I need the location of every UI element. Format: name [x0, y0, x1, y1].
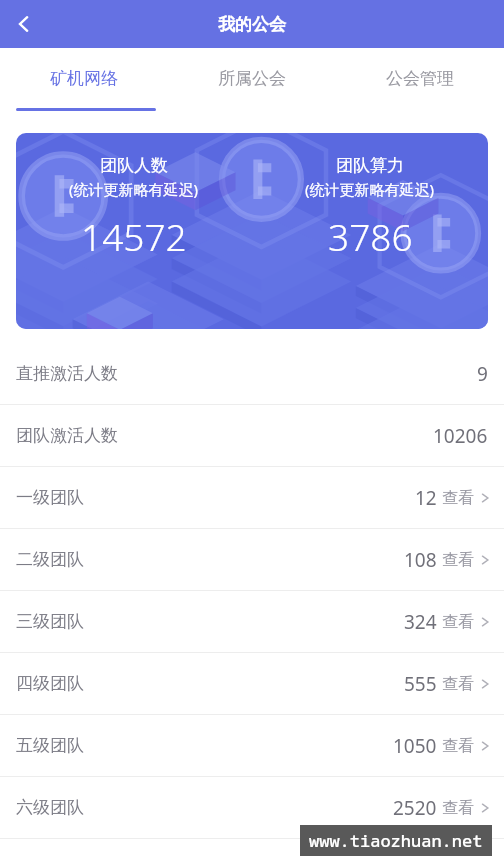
- button[interactable]: 团队人数: [16, 133, 488, 329]
- staticText: 公会管理: [386, 68, 454, 89]
- staticText: 查看: [442, 488, 474, 508]
- staticText: 五级团队: [16, 735, 84, 756]
- button[interactable]: 三级团队: [0, 591, 504, 652]
- staticText: 108: [404, 547, 437, 573]
- staticText: 团队激活人数: [16, 425, 118, 446]
- button[interactable]: Back: [0, 0, 48, 48]
- staticText: 10206: [433, 423, 488, 449]
- staticText: 2520: [393, 795, 437, 821]
- button[interactable]: 团队激活人数: [0, 405, 504, 466]
- staticText: 矿机网络: [50, 68, 118, 89]
- staticText: 团队算力: [336, 155, 404, 176]
- staticText: www.tiaozhuan.net: [309, 829, 483, 852]
- staticText: 324: [404, 609, 437, 635]
- staticText: 三级团队: [16, 611, 84, 632]
- staticText: 查看: [442, 612, 474, 632]
- staticText: (统计更新略有延迟): [305, 179, 435, 199]
- staticText: 12: [415, 485, 437, 511]
- staticText: 查看: [442, 798, 474, 818]
- button[interactable]: 二级团队: [0, 529, 504, 590]
- staticText: 查看: [442, 736, 474, 756]
- staticText: 六级团队: [16, 797, 84, 818]
- staticText: 14572: [81, 211, 187, 261]
- staticText: 3786: [328, 211, 413, 261]
- button[interactable]: 四级团队: [0, 653, 504, 714]
- staticText: (统计更新略有延迟): [69, 179, 199, 199]
- staticText: 我的公会: [218, 14, 286, 35]
- button[interactable]: 直推激活人数: [0, 343, 504, 404]
- staticText: 直推激活人数: [16, 363, 118, 384]
- button[interactable]: 六级团队: [0, 777, 504, 838]
- staticText: 9: [477, 361, 488, 387]
- staticText: 二级团队: [16, 549, 84, 570]
- staticText: 一级团队: [16, 487, 84, 508]
- button[interactable]: 公会管理: [336, 48, 504, 117]
- staticText: 团队人数: [100, 155, 168, 176]
- button[interactable]: 矿机网络: [0, 48, 168, 117]
- staticText: 1050: [393, 733, 437, 759]
- staticText: 查看: [442, 550, 474, 570]
- staticText: 四级团队: [16, 673, 84, 694]
- button[interactable]: 所属公会: [168, 48, 336, 117]
- staticText: 所属公会: [218, 68, 286, 89]
- staticText: 查看: [442, 674, 474, 694]
- button[interactable]: 一级团队: [0, 467, 504, 528]
- button[interactable]: 五级团队: [0, 715, 504, 776]
- staticText: 555: [404, 671, 437, 697]
